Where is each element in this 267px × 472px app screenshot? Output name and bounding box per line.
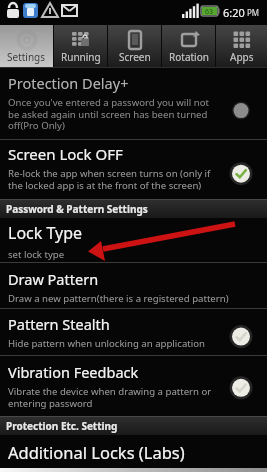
staticText: Screen Lock OFF [8,144,123,164]
button[interactable]: Running [54,25,107,67]
staticText: Protection Etc. Setting [6,419,118,433]
button[interactable]: Rotation [162,25,215,67]
staticText: Rotation [169,50,209,64]
button[interactable]: Pattern Stealth [0,309,267,355]
button[interactable]: Protection Delay+ [0,68,267,139]
staticText: Lock Type [8,222,83,244]
staticText: Vibrate the device when drawing a patter… [8,385,212,410]
button[interactable]: Apps [216,25,267,67]
staticText: 6:20 [223,5,245,20]
staticText: Pattern Stealth [8,314,110,334]
staticText: Vibration Feedback [8,362,139,382]
staticText: Running [61,50,101,64]
button[interactable]: Vibration Feedback [0,356,267,416]
staticText: set lock type [8,248,65,261]
staticText: Settings [7,50,46,64]
staticText: Apps [230,50,254,64]
staticText: Protection Delay+ [8,73,129,93]
staticText: PM [247,7,260,18]
staticText: Screen [119,50,151,64]
staticText: Draw Pattern [8,269,99,289]
staticText: Hide pattern when unlocking an applicati… [8,337,205,350]
staticText: Password & Pattern Settings [6,202,148,216]
button[interactable]: Settings [0,25,53,67]
staticText: 63 [205,7,214,17]
staticText: Additional Locks (Labs) [8,441,185,463]
button[interactable]: Screen Lock OFF [0,140,267,199]
button[interactable]: Additional Locks (Labs) [0,435,267,472]
staticText: Draw a new pattern(there is a registered… [8,292,229,305]
button[interactable]: Screen [108,25,161,67]
staticText: Re-lock the app when screen turns on (on… [8,167,211,192]
staticText: Once you've entered a password you will … [8,96,209,132]
button[interactable]: Lock Type [0,218,267,262]
button[interactable]: Draw Pattern [0,263,267,308]
